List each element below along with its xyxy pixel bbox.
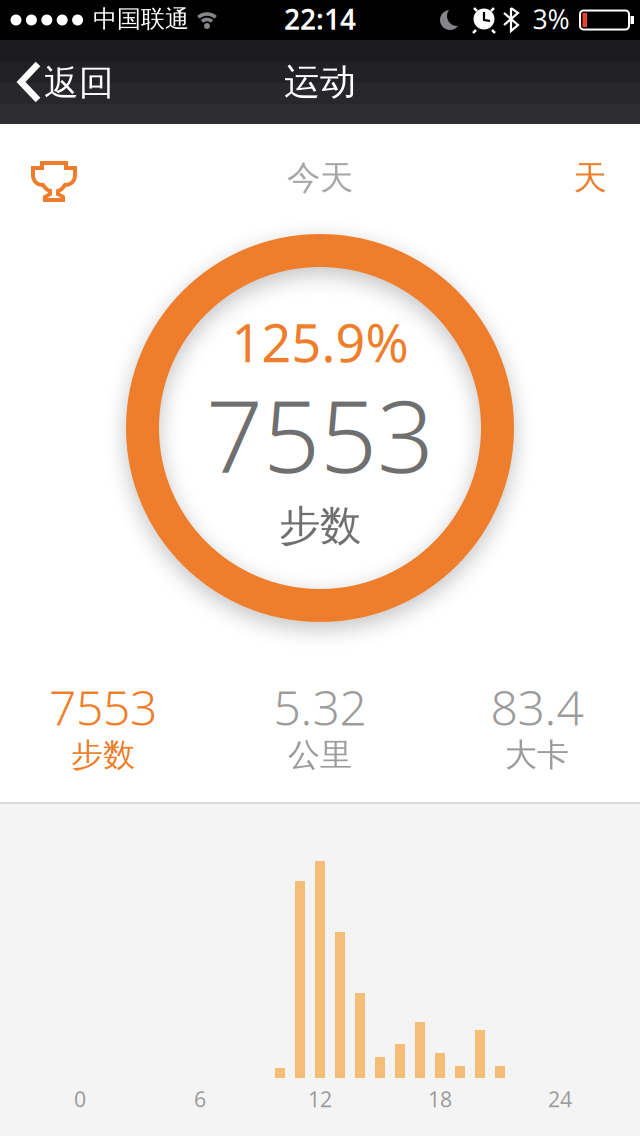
staticText: 6	[194, 1085, 206, 1113]
button[interactable]: 返回	[0, 40, 130, 124]
staticText: 125.9%	[231, 307, 408, 377]
staticText: 3%	[532, 1, 569, 37]
staticText: 5.32	[273, 675, 366, 739]
button[interactable]: 天	[555, 150, 625, 206]
staticText: 12	[308, 1085, 332, 1113]
staticText: 天	[573, 157, 606, 198]
staticText: 大卡	[505, 735, 569, 775]
staticText: 返回	[44, 62, 114, 104]
staticText: 今天	[287, 157, 353, 198]
staticText: 步数	[71, 735, 135, 775]
staticText: 7553	[206, 368, 434, 500]
staticText: 18	[428, 1085, 452, 1113]
staticText: 步数	[279, 501, 361, 551]
staticText: 83.4	[490, 675, 583, 739]
staticText: 24	[548, 1085, 572, 1113]
staticText: 运动	[284, 60, 356, 104]
button[interactable]: 排行榜	[22, 151, 86, 211]
staticText: 22:14	[284, 0, 356, 38]
staticText: 中国联通	[93, 4, 189, 34]
staticText: 0	[74, 1085, 86, 1113]
staticText: 7553	[49, 675, 157, 739]
staticText: 公里	[288, 735, 352, 775]
